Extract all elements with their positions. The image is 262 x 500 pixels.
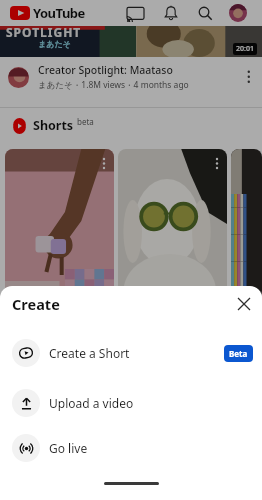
staticText: まあたそ <box>38 39 71 49</box>
button[interactable]: Upload a video <box>0 389 262 417</box>
staticText: Shorts <box>33 117 74 134</box>
button[interactable] <box>5 149 114 299</box>
button[interactable]: Create a Short <box>0 339 262 367</box>
button[interactable]: Creator Spotlight: Maataso <box>0 57 262 97</box>
button[interactable] <box>238 65 262 89</box>
button[interactable] <box>229 4 247 22</box>
button[interactable] <box>211 157 223 171</box>
button[interactable] <box>238 298 250 310</box>
staticText: Go live <box>49 440 88 456</box>
staticText: Creator Spotlight: Maataso <box>38 63 173 77</box>
button[interactable] <box>118 149 227 299</box>
staticText: Create <box>12 294 60 314</box>
staticText: Beta <box>229 348 248 359</box>
button[interactable] <box>163 5 179 21</box>
staticText: beta <box>77 116 94 127</box>
staticText: YouTube <box>33 4 85 22</box>
button[interactable] <box>231 149 262 299</box>
button[interactable] <box>98 157 110 171</box>
staticText: まあたそ・1.8M views・4 months ago <box>38 79 189 91</box>
staticText: Create a Short <box>49 345 130 361</box>
staticText: Upload a video <box>49 395 134 411</box>
staticText: SPOTLIGHT <box>6 26 82 40</box>
button[interactable] <box>127 5 144 22</box>
button[interactable] <box>197 5 213 21</box>
button[interactable]: Go live <box>0 434 262 462</box>
staticText: 20:01 <box>236 44 254 54</box>
